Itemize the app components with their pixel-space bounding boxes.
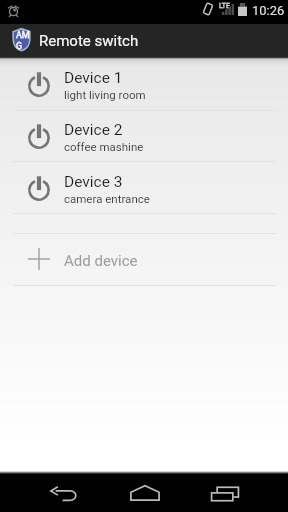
button[interactable]: Recent apps xyxy=(183,474,267,512)
button[interactable]: Add device xyxy=(0,233,288,285)
staticText: Add device xyxy=(64,252,138,270)
button[interactable]: Home xyxy=(103,474,187,512)
staticText: 10:26 xyxy=(252,3,285,18)
staticText: Device 2 xyxy=(64,121,123,139)
button[interactable]: Device 1 xyxy=(0,58,288,110)
button[interactable]: Device 2 xyxy=(0,110,288,162)
staticText: AMG xyxy=(16,30,35,52)
staticText: camera entrance xyxy=(64,192,150,205)
button[interactable]: Back xyxy=(22,474,106,512)
staticText: LTE xyxy=(219,2,230,10)
button[interactable]: Device 3 xyxy=(0,162,288,214)
staticText: light living room xyxy=(64,88,146,101)
staticText: Remote switch xyxy=(39,32,139,50)
staticText: Device 3 xyxy=(64,173,123,191)
staticText: Device 1 xyxy=(64,69,123,87)
staticText: coffee mashine xyxy=(64,140,144,153)
